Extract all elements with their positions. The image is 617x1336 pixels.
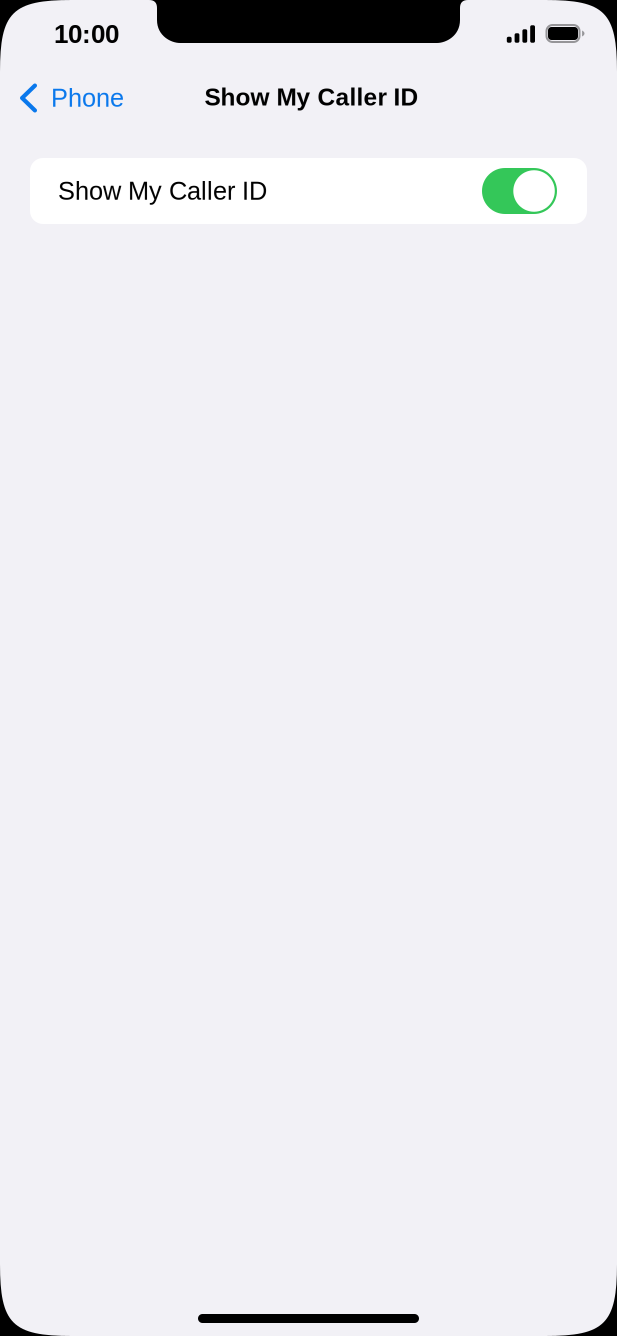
staticText: Show My Caller ID [204,83,418,111]
button[interactable]: Show My Caller ID [30,158,587,224]
staticText: Phone [51,84,124,112]
staticText: Show My Caller ID [58,177,267,205]
staticText: 10:00 [54,19,119,48]
button[interactable]: Phone [0,71,138,122]
